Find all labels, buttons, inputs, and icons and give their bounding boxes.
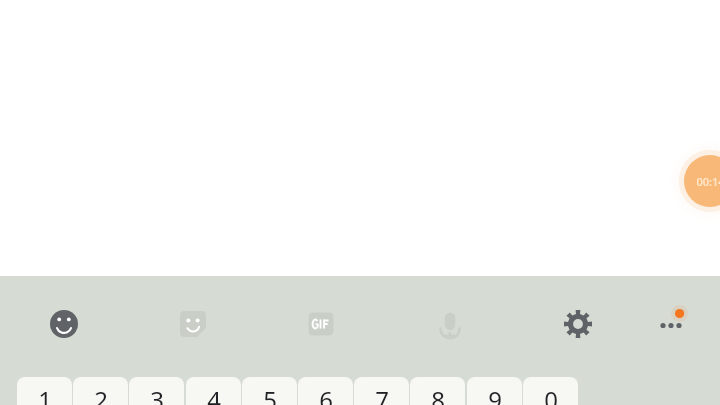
button[interactable]: GIF [297, 300, 345, 348]
button[interactable]: Emoji [40, 300, 88, 348]
button[interactable]: More options [647, 300, 695, 348]
staticText: 3 [150, 383, 164, 405]
button[interactable]: 4 [186, 377, 241, 405]
staticText: 0 [544, 383, 558, 405]
button[interactable]: Voice input [426, 300, 474, 348]
button[interactable]: Settings [554, 300, 602, 348]
button[interactable]: 2 [73, 377, 128, 405]
button[interactable]: Stickers [169, 300, 217, 348]
staticText: 8 [431, 383, 445, 405]
button[interactable]: 6 [298, 377, 353, 405]
staticText: 5 [263, 383, 277, 405]
button[interactable]: 5 [242, 377, 297, 405]
button[interactable]: 1 [17, 377, 72, 405]
button[interactable]: 7 [354, 377, 409, 405]
staticText: 00:14 [696, 174, 720, 189]
staticText: 7 [375, 383, 389, 405]
button[interactable]: 0 [523, 377, 578, 405]
button[interactable]: 3 [129, 377, 184, 405]
staticText: 9 [488, 383, 502, 405]
staticText: 6 [319, 383, 333, 405]
button[interactable]: Recording voice message, 00:14 [662, 133, 720, 229]
staticText: 2 [94, 383, 108, 405]
button[interactable]: 8 [410, 377, 465, 405]
staticText: 1 [38, 383, 52, 405]
staticText: 4 [207, 383, 221, 405]
button[interactable]: 9 [467, 377, 522, 405]
